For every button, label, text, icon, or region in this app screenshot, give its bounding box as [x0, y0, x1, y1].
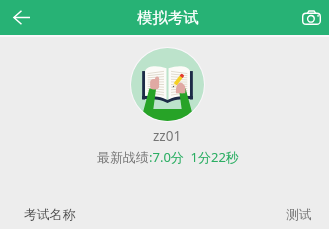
button[interactable]: Back	[1, 0, 41, 35]
staticText: 最新战绩:7.0分 1分22秒	[97, 148, 239, 166]
staticText: 考试名称	[24, 207, 76, 223]
button[interactable]: 考试名称	[0, 200, 329, 229]
button[interactable]: User avatar	[131, 48, 204, 121]
staticText: 模拟考试	[137, 8, 199, 28]
button[interactable]: Camera	[294, 0, 329, 35]
staticText: 测试	[286, 207, 312, 223]
staticText: zz01	[153, 127, 182, 145]
